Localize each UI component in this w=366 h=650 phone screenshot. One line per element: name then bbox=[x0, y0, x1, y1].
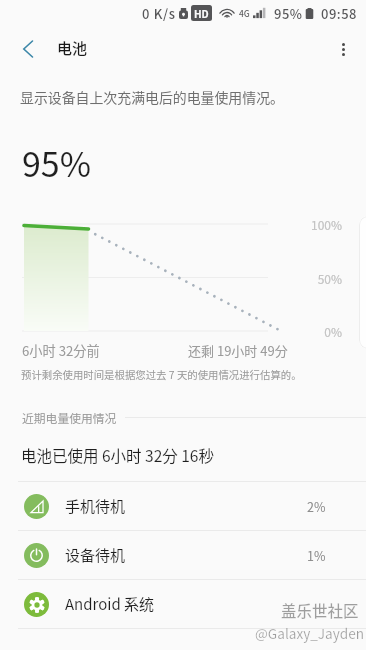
button[interactable]: 设备待机 bbox=[0, 531, 366, 579]
staticText: 09:58 bbox=[321, 4, 358, 23]
staticText: 显示设备自上次充满电后的电量使用情况。 bbox=[20, 87, 284, 107]
staticText: 电池 bbox=[57, 37, 88, 59]
staticText: HD bbox=[194, 6, 209, 20]
staticText: 50% bbox=[252, 270, 342, 287]
button[interactable]: Back bbox=[8, 29, 48, 69]
button[interactable]: More options bbox=[320, 26, 366, 72]
staticText: 2% bbox=[307, 497, 326, 515]
staticText: 95% bbox=[22, 138, 92, 187]
staticText: 盖乐世社区 bbox=[281, 599, 359, 621]
staticText: 0% bbox=[252, 323, 342, 340]
staticText: 电池已使用 6小时 32分 16秒 bbox=[21, 444, 214, 466]
staticText: 4G bbox=[239, 7, 250, 19]
staticText: 0 K/s bbox=[142, 4, 176, 23]
staticText: 手机待机 bbox=[65, 495, 126, 517]
button[interactable]: 手机待机 bbox=[0, 482, 366, 530]
staticText: @Galaxy_Jayden bbox=[255, 623, 365, 643]
staticText: 还剩 19小时 49分 bbox=[188, 341, 288, 360]
staticText: Android 系统 bbox=[65, 593, 155, 615]
staticText: 95% bbox=[274, 4, 303, 23]
staticText: 设备待机 bbox=[65, 544, 126, 566]
staticText: 近期电量使用情况 bbox=[22, 409, 117, 426]
button[interactable]: Android 系统 bbox=[0, 580, 366, 628]
staticText: 预计剩余使用时间是根据您过去 7 天的使用情况进行估算的。 bbox=[21, 367, 302, 382]
staticText: 100% bbox=[252, 216, 342, 233]
staticText: 1% bbox=[307, 546, 326, 564]
staticText: 6小时 32分前 bbox=[22, 341, 100, 360]
